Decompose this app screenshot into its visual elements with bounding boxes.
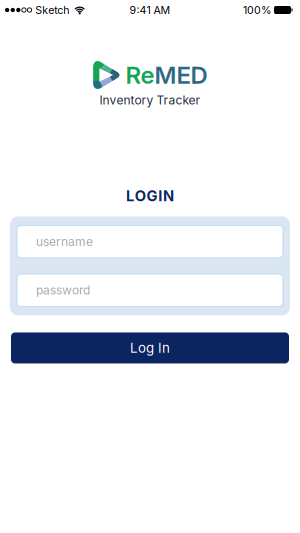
staticText: username <box>36 235 93 249</box>
staticText: Inventory Tracker <box>99 93 200 107</box>
staticText: 9:41 AM <box>129 4 170 16</box>
staticText: Sketch <box>35 4 69 16</box>
staticText: MED <box>154 61 207 89</box>
staticText: LOGIN <box>126 187 174 204</box>
staticText: Log In <box>130 340 170 356</box>
staticText: Re <box>125 61 154 89</box>
staticText: 100% <box>243 4 271 16</box>
staticText: password <box>36 283 90 297</box>
